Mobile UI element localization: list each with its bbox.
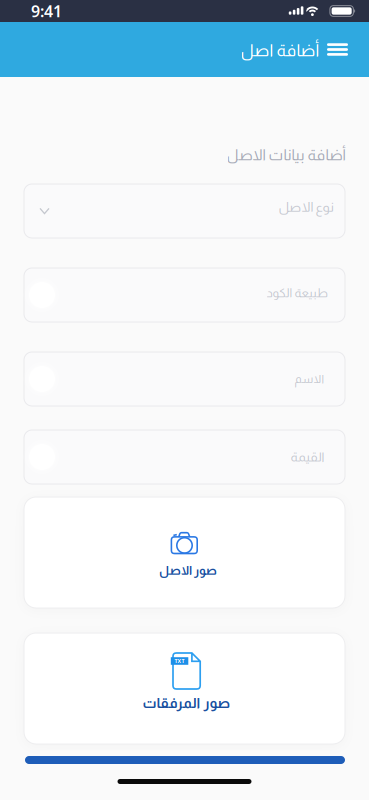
staticText: صور المرفقات (142, 695, 230, 711)
staticText: طبيعة الكود (266, 286, 327, 300)
staticText: 9:41 (31, 0, 62, 22)
staticText: صور الاصل (158, 564, 216, 577)
button[interactable]: صور الاصل (0, 497, 369, 608)
staticText: القيمة (290, 450, 324, 464)
button[interactable]: الاسم (0, 352, 369, 406)
staticText: نوع الاصل (278, 199, 333, 214)
staticText: أضافة اصل (240, 41, 319, 60)
staticText: TXT (175, 657, 185, 665)
button[interactable]: Save (0, 756, 369, 764)
button[interactable]: القيمة (0, 430, 369, 484)
button[interactable]: TXT (0, 633, 369, 744)
button[interactable]: نوع الاصل (0, 184, 369, 238)
staticText: أضافة بيانات الاصل (226, 146, 345, 163)
button[interactable]: طبيعة الكود (0, 268, 369, 322)
staticText: الاسم (294, 372, 324, 385)
button[interactable]: Menu (327, 37, 348, 62)
